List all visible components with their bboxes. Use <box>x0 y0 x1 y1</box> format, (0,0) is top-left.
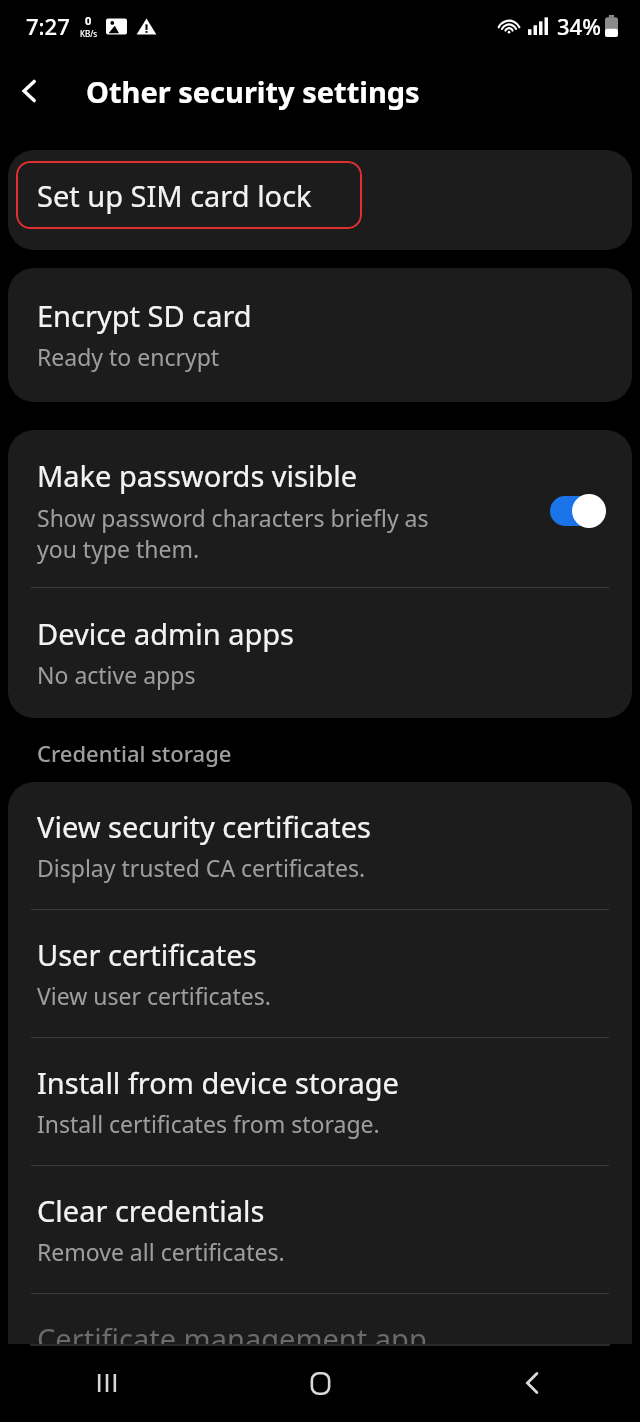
button[interactable]: User certificates <box>8 910 632 1037</box>
button[interactable]: Encrypt SD card <box>8 268 632 402</box>
staticText: Other security settings <box>86 72 420 111</box>
staticText: Install from device storage <box>37 1063 399 1102</box>
staticText: Encrypt SD card <box>37 296 252 335</box>
staticText: Show password characters briefly as you … <box>37 502 467 565</box>
staticText: Remove all certificates. <box>37 1236 285 1267</box>
button[interactable]: Device admin apps <box>8 588 632 718</box>
staticText: KB/s <box>80 28 97 39</box>
button[interactable]: Set up SIM card lock <box>16 161 362 229</box>
staticText: 34% <box>557 11 601 41</box>
staticText: View security certificates <box>37 807 371 846</box>
button[interactable]: Make passwords visible <box>8 430 632 587</box>
staticText: Make passwords visible <box>37 456 358 495</box>
button[interactable]: Recent apps <box>71 1347 143 1419</box>
staticText: No active apps <box>37 659 196 690</box>
staticText: Certificate management app <box>37 1319 427 1358</box>
button[interactable]: Make passwords visible toggle <box>550 494 606 528</box>
staticText: 7:27 <box>26 11 70 41</box>
staticText: Set up SIM card lock <box>37 176 312 215</box>
staticText: Credential storage <box>37 738 232 768</box>
staticText: Device admin apps <box>37 614 294 653</box>
staticText: View user certificates. <box>37 980 271 1011</box>
staticText: User certificates <box>37 935 257 974</box>
staticText: Install certificates from storage. <box>37 1108 380 1139</box>
staticText: Ready to encrypt <box>37 341 220 372</box>
button[interactable]: View security certificates <box>8 782 632 909</box>
staticText: Display trusted CA certificates. <box>37 852 366 883</box>
button[interactable]: Home <box>284 1347 356 1419</box>
staticText: 0 <box>85 13 92 28</box>
button[interactable]: Install from device storage <box>8 1038 632 1165</box>
button[interactable]: Clear credentials <box>8 1166 632 1293</box>
button[interactable]: Back <box>497 1347 569 1419</box>
staticText: Clear credentials <box>37 1191 265 1230</box>
button[interactable]: Back <box>0 61 60 121</box>
